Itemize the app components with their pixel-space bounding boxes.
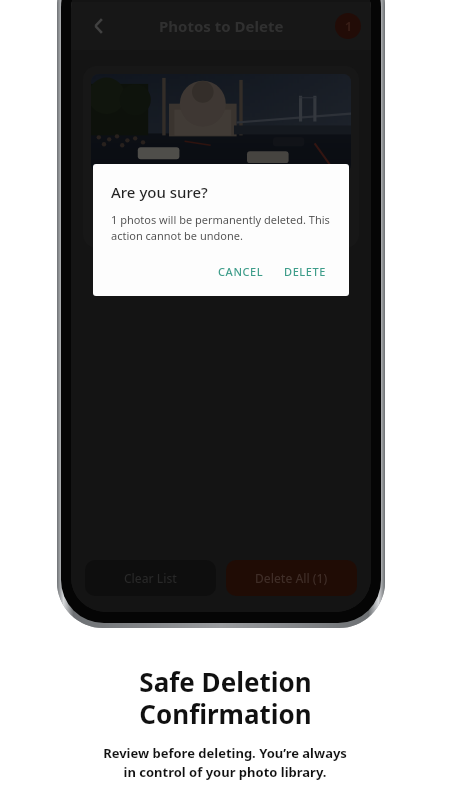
button[interactable]: DELETE	[276, 257, 335, 286]
staticText: Clear List	[124, 570, 177, 586]
button[interactable]: Delete All (1)	[226, 560, 357, 596]
button[interactable]: #1	[83, 66, 359, 248]
button[interactable]: Restore photo	[204, 200, 238, 234]
staticText: Are you sure?	[111, 182, 208, 202]
button[interactable]: CANCEL	[210, 257, 272, 286]
staticText: Photos to Delete	[159, 16, 284, 36]
staticText: DELETE	[284, 264, 327, 279]
staticText: Delete All (1)	[255, 570, 328, 586]
staticText: 1 photos will be permanently deleted. Th…	[111, 212, 335, 243]
staticText: Review before deleting. You’re always in…	[103, 744, 347, 781]
button[interactable]: Selected count	[335, 13, 361, 39]
button[interactable]: Clear List	[85, 560, 216, 596]
button[interactable]: Back	[77, 4, 121, 48]
staticText: CANCEL	[218, 264, 264, 279]
staticText: 1	[345, 18, 352, 34]
staticText: Safe Deletion Confirmation	[139, 664, 312, 732]
